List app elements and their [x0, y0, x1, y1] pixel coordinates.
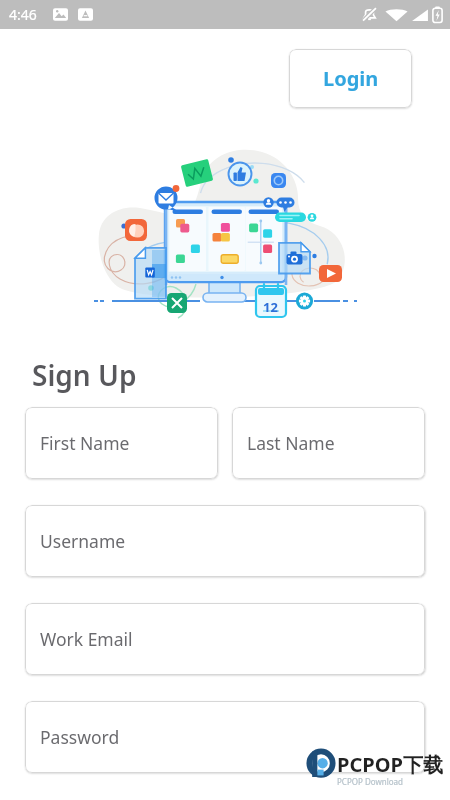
- staticText: PCPOP下载: [337, 751, 443, 778]
- staticText: 4:46: [9, 5, 37, 24]
- button[interactable]: Work Email: [25, 603, 425, 675]
- staticText: Work Email: [40, 627, 133, 651]
- staticText: Sign Up: [32, 356, 137, 394]
- staticText: 12: [263, 298, 278, 316]
- button[interactable]: Last Name: [232, 407, 425, 479]
- button[interactable]: Username: [25, 505, 425, 577]
- staticText: PCPOP Download: [337, 776, 403, 787]
- staticText: First Name: [40, 431, 130, 455]
- staticText: Username: [40, 529, 126, 553]
- button[interactable]: First Name: [25, 407, 218, 479]
- button[interactable]: Login: [289, 49, 412, 108]
- button[interactable]: Password: [25, 701, 425, 773]
- staticText: Password: [40, 725, 120, 749]
- staticText: Login: [323, 65, 379, 92]
- staticText: Last Name: [247, 431, 335, 455]
